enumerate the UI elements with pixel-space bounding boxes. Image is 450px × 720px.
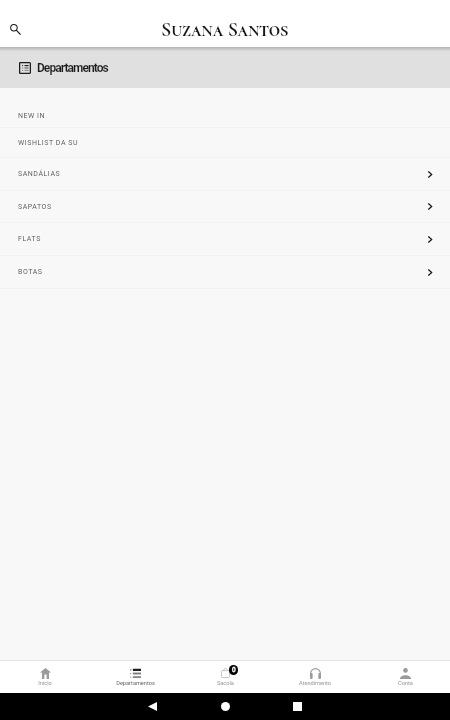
staticText: Atendimento [299, 680, 331, 687]
button[interactable]: Início [0, 661, 90, 693]
button[interactable]: Back [139, 693, 166, 720]
button[interactable]: Recents [284, 693, 311, 720]
button[interactable]: SAPATOS [0, 191, 450, 223]
staticText: 0 [232, 666, 236, 674]
button[interactable]: NEW IN [0, 88, 450, 128]
button[interactable]: Conta [360, 661, 450, 693]
staticText: Suzana Santos [161, 18, 289, 42]
button[interactable]: FLATS [0, 223, 450, 256]
button[interactable]: Departamentos [90, 661, 180, 693]
button[interactable]: Departamentos [0, 51, 450, 88]
button[interactable]: SANDÁLIAS [0, 158, 450, 191]
staticText: Departamentos [116, 680, 155, 687]
button[interactable]: WISHLIST DA SU [0, 128, 450, 158]
staticText: SAPATOS [18, 203, 52, 211]
button[interactable]: Home [212, 693, 239, 720]
staticText: Departamentos [37, 61, 108, 75]
button[interactable]: Search [0, 7, 37, 51]
staticText: BOTAS [18, 268, 43, 276]
staticText: SANDÁLIAS [18, 170, 61, 178]
button[interactable]: Atendimento [270, 661, 360, 693]
staticText: WISHLIST DA SU [18, 139, 79, 147]
button[interactable]: BOTAS [0, 256, 450, 289]
staticText: Sacola [217, 680, 234, 687]
staticText: Início [38, 680, 52, 687]
staticText: Conta [398, 680, 413, 687]
staticText: FLATS [18, 235, 41, 243]
button[interactable]: 0 [180, 661, 270, 693]
staticText: NEW IN [18, 112, 46, 120]
